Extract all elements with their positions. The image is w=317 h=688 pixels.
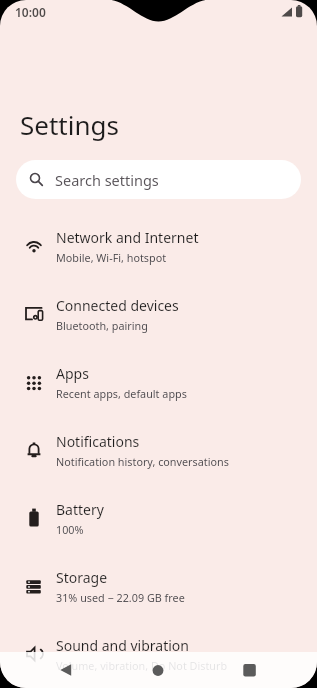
staticText: 31% used − 22.09 GB free <box>56 590 185 605</box>
staticText: 100% <box>56 522 84 537</box>
button[interactable]: Storage <box>0 552 317 620</box>
button[interactable]: Notifications <box>0 416 317 484</box>
staticText: Connected devices <box>56 296 179 315</box>
staticText: Recent apps, default apps <box>56 386 187 401</box>
button[interactable]: Connected devices <box>0 280 317 348</box>
button[interactable] <box>225 652 273 688</box>
staticText: Mobile, Wi-Fi, hotspot <box>56 250 167 265</box>
button[interactable] <box>42 652 90 688</box>
staticText: Volume, vibration, Do Not Disturb <box>56 658 228 673</box>
staticText: Sound and vibration <box>56 636 189 655</box>
staticText: Network and Internet <box>56 228 199 247</box>
button[interactable] <box>134 652 182 688</box>
staticText: Battery <box>56 500 104 519</box>
staticText: Search settings <box>55 170 159 190</box>
staticText: Bluetooth, pairing <box>56 318 148 333</box>
staticText: Notifications <box>56 432 140 451</box>
button[interactable]: Network and Internet <box>0 212 317 280</box>
button[interactable]: Apps <box>0 348 317 416</box>
button[interactable]: Search settings <box>16 160 301 199</box>
staticText: Apps <box>56 364 89 383</box>
staticText: 10:00 <box>15 4 46 20</box>
staticText: Notification history, conversations <box>56 454 229 469</box>
staticText: Storage <box>56 568 108 587</box>
button[interactable]: Battery <box>0 484 317 552</box>
button[interactable]: Sound and vibration <box>0 620 317 688</box>
staticText: Settings <box>20 107 119 142</box>
